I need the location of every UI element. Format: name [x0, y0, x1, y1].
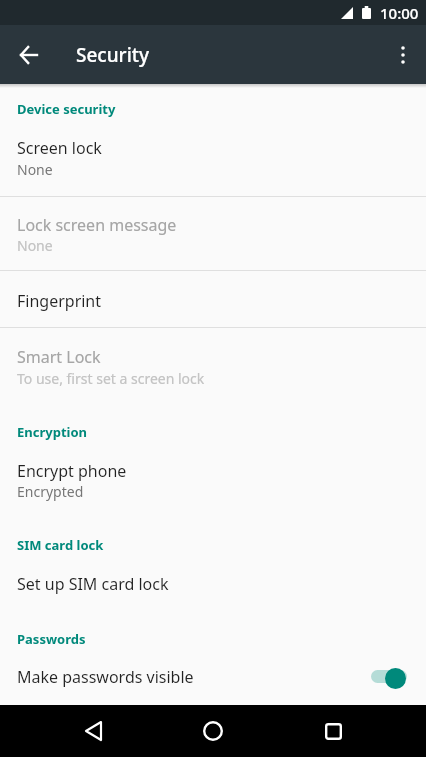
button[interactable] [173, 705, 253, 757]
staticText: Lock screen message [17, 214, 177, 236]
button[interactable] [387, 39, 419, 71]
staticText: Screen lock [17, 137, 102, 159]
staticText: Device security [17, 100, 116, 118]
button[interactable] [0, 651, 426, 705]
staticText: Encrypt phone [17, 460, 127, 482]
staticText: Smart Lock [17, 346, 101, 368]
staticText: None [17, 160, 53, 179]
button[interactable] [53, 705, 133, 757]
button[interactable] [0, 558, 426, 612]
button[interactable] [0, 445, 426, 518]
staticText: Encrypted [17, 482, 84, 501]
button[interactable] [293, 705, 373, 757]
staticText: SIM card lock [17, 536, 104, 554]
button[interactable] [0, 196, 426, 270]
button[interactable] [0, 122, 426, 196]
button[interactable] [0, 327, 426, 406]
button[interactable] [13, 39, 45, 71]
staticText: Encryption [17, 423, 87, 441]
staticText: Security [76, 42, 150, 68]
staticText: Make passwords visible [17, 666, 194, 688]
staticText: Passwords [17, 630, 86, 648]
button[interactable] [0, 270, 426, 327]
staticText: To use, first set a screen lock [17, 369, 205, 388]
staticText: Fingerprint [17, 290, 102, 312]
staticText: 10:00 [380, 3, 419, 23]
button[interactable] [385, 668, 406, 689]
staticText: None [17, 236, 53, 255]
staticText: Set up SIM card lock [17, 573, 169, 595]
